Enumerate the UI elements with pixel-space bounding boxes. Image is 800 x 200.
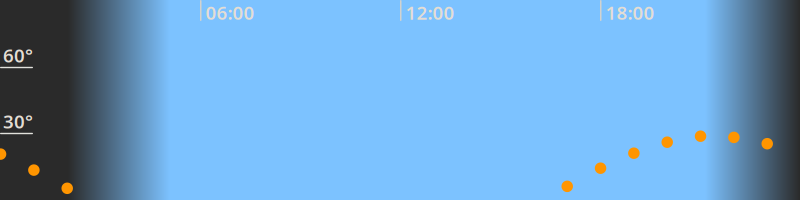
staticText: 60° [3, 43, 33, 68]
staticText: 12:00 [405, 0, 454, 25]
staticText: 06:00 [205, 0, 254, 25]
staticText: 30° [3, 109, 33, 134]
staticText: 18:00 [605, 0, 654, 25]
